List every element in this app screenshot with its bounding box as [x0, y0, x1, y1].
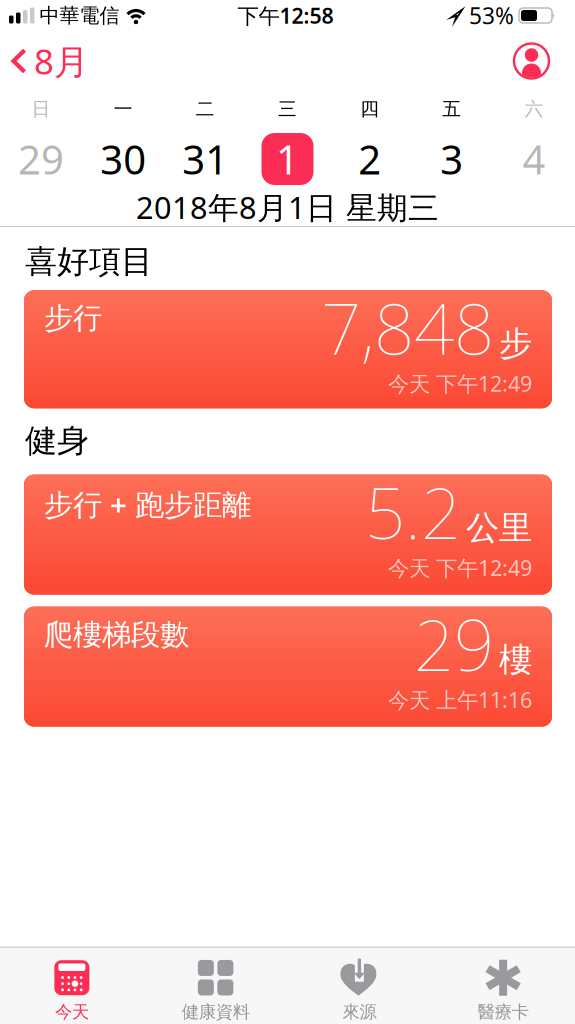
button[interactable]: 醫療卡 [431, 960, 575, 1022]
button[interactable]: 4 [493, 132, 575, 185]
staticText: 4 [522, 132, 545, 185]
staticText: 5.2 [365, 465, 461, 558]
staticText: 六 [524, 97, 543, 120]
staticText: 健身 [25, 421, 89, 461]
button[interactable]: 29 [0, 132, 82, 185]
staticText: 公里 [466, 507, 532, 548]
button[interactable]: 3 [411, 132, 493, 185]
staticText: 日 [32, 97, 51, 120]
staticText: 步 [499, 323, 532, 364]
staticText: 五 [442, 97, 461, 120]
staticText: 8月 [34, 38, 89, 84]
button[interactable]: 今天 [0, 960, 144, 1022]
staticText: 今天 上午11:16 [388, 686, 532, 714]
staticText: 今天 下午12:49 [388, 369, 532, 398]
staticText: 7,848 [321, 280, 494, 374]
button[interactable]: 步行 + 跑步距離 [0, 475, 575, 595]
staticText: 健康資料 [182, 1001, 250, 1022]
staticText: 一 [114, 97, 133, 120]
button[interactable]: 1 [246, 132, 328, 185]
staticText: 今天 下午12:49 [388, 554, 532, 582]
staticText: 四 [360, 97, 379, 120]
staticText: 醫療卡 [478, 1001, 529, 1022]
staticText: 步行 + 跑步距離 [44, 485, 251, 524]
staticText: 樓 [499, 639, 532, 680]
staticText: 二 [196, 97, 215, 120]
staticText: 1 [276, 132, 299, 185]
staticText: 中華電信 [39, 3, 119, 28]
staticText: 下午12:58 [237, 1, 333, 30]
staticText: 2018年8月1日 星期三 [136, 187, 439, 227]
staticText: 31 [182, 132, 228, 185]
button[interactable]: 30 [82, 132, 164, 185]
button[interactable]: 2 [329, 132, 411, 185]
button[interactable]: 步行 [0, 290, 575, 408]
staticText: 今天 [55, 1001, 89, 1022]
button[interactable]: 31 [164, 132, 246, 185]
button[interactable]: 8月 [0, 38, 89, 84]
staticText: 30 [100, 132, 146, 185]
staticText: 29 [18, 132, 64, 185]
staticText: 53% [469, 0, 514, 30]
staticText: 爬樓梯段數 [44, 617, 189, 653]
button[interactable]: 爬樓梯段數 [0, 607, 575, 727]
staticText: 3 [440, 132, 463, 185]
staticText: 三 [278, 97, 297, 120]
button[interactable]: 來源 [287, 960, 431, 1022]
staticText: 2 [358, 132, 381, 185]
button[interactable]: 健康資料 [144, 960, 288, 1022]
staticText: 喜好項目 [25, 242, 153, 281]
staticText: 步行 [44, 300, 102, 336]
button[interactable] [513, 42, 575, 79]
staticText: 來源 [342, 1001, 376, 1022]
staticText: 29 [414, 597, 494, 690]
